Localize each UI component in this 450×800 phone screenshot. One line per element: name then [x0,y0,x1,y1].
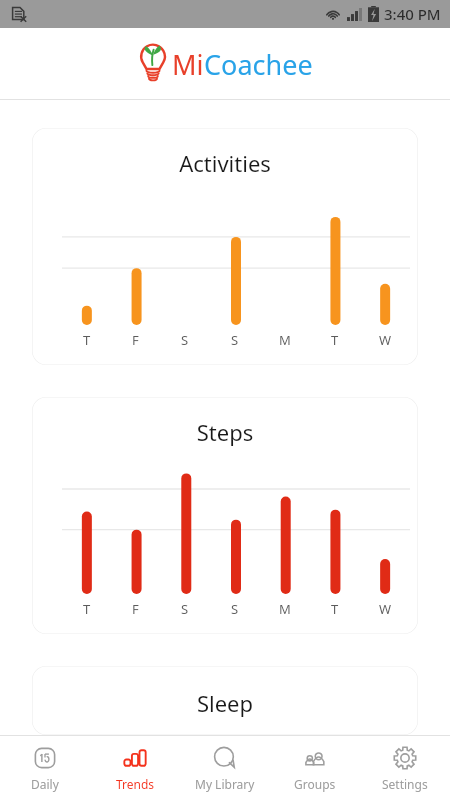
staticText: S [181,600,189,618]
staticText: M [279,331,291,349]
staticText: T [83,331,91,349]
staticText: Steps [32,417,418,447]
other: No SIM card [9,0,29,28]
staticText: Activities [32,148,418,178]
staticText: F [132,331,139,349]
staticText: T [83,600,91,618]
staticText: M [279,600,291,618]
button[interactable]: Settings [360,745,450,792]
button[interactable]: Steps [32,397,418,634]
staticText: S [231,600,239,618]
staticText: 3:40 PM [384,4,441,24]
staticText: W [379,600,392,618]
staticText: Sleep [32,688,418,718]
staticText: T [331,331,339,349]
button[interactable]: Trends [90,745,180,792]
button[interactable]: Groups [270,745,360,792]
staticText: T [331,600,339,618]
button[interactable]: Activities [32,128,418,365]
staticText: Settings [382,776,428,792]
staticText: Groups [294,776,336,792]
staticText: W [379,331,392,349]
staticText: S [231,331,239,349]
staticText: Coachee [204,46,313,83]
button[interactable]: MiCoachee logo [137,42,313,86]
button[interactable]: My Library [180,745,270,792]
staticText: Daily [31,776,59,792]
other: MiCoachee logo [137,42,169,86]
staticText: F [132,600,139,618]
button[interactable]: Sleep [32,666,418,735]
button[interactable]: Daily [0,745,90,792]
staticText: Trends [116,776,155,792]
staticText: Mi [172,46,204,83]
staticText: S [181,331,189,349]
staticText: My Library [195,776,255,792]
